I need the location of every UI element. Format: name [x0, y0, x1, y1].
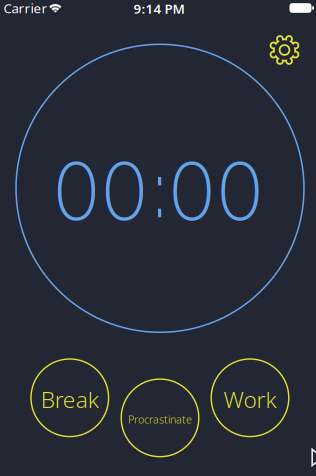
staticText: 9:14 PM [133, 0, 184, 17]
button[interactable] [264, 30, 304, 70]
button[interactable]: Work [211, 359, 289, 437]
button[interactable]: Procrastinate [121, 379, 199, 457]
staticText: Work [223, 384, 276, 414]
staticText: Procrastinate [128, 412, 192, 426]
staticText: 00 [168, 143, 264, 239]
button[interactable]: Break [31, 359, 109, 437]
staticText: 00 [53, 143, 149, 239]
staticText: Carrier [3, 0, 47, 17]
staticText: Break [41, 384, 99, 414]
